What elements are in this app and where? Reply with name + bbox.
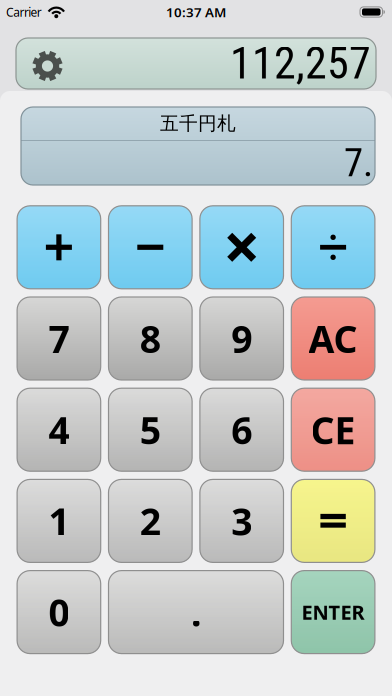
- button[interactable]: 2: [108, 479, 192, 562]
- button[interactable]: 8: [108, 297, 192, 380]
- staticText: 0: [48, 587, 69, 637]
- button[interactable]: 5: [108, 388, 192, 471]
- button[interactable]: Divide: [291, 206, 375, 289]
- staticText: 8: [140, 314, 161, 363]
- staticText: 4: [48, 405, 69, 454]
- button[interactable]: 6: [200, 388, 283, 471]
- staticText: 6: [231, 405, 252, 454]
- staticText: 7: [48, 314, 69, 363]
- staticText: 1: [48, 496, 69, 546]
- staticText: Carrier: [6, 4, 42, 20]
- button[interactable]: Decimal point: [108, 571, 283, 654]
- staticText: CE: [311, 405, 356, 454]
- button[interactable]: 3: [200, 479, 283, 562]
- button[interactable]: Multiply: [200, 206, 283, 289]
- staticText: 五千円札: [160, 112, 236, 135]
- staticText: 7.: [344, 140, 373, 186]
- button[interactable]: Subtract: [108, 206, 192, 289]
- button[interactable]: CE: [291, 388, 375, 471]
- button[interactable]: Equals: [291, 479, 375, 562]
- staticText: ENTER: [302, 599, 365, 625]
- staticText: 112,257: [230, 38, 371, 89]
- staticText: .: [191, 587, 201, 637]
- staticText: AC: [309, 314, 358, 363]
- button[interactable]: Add: [17, 206, 101, 289]
- staticText: 9: [231, 314, 252, 363]
- button[interactable]: Settings: [32, 50, 63, 81]
- button[interactable]: AC: [291, 297, 375, 380]
- button[interactable]: 7: [17, 297, 101, 380]
- staticText: 5: [140, 405, 161, 454]
- staticText: 3: [231, 496, 252, 546]
- staticText: 2: [140, 496, 161, 546]
- button[interactable]: 1: [17, 479, 101, 562]
- button[interactable]: ENTER: [291, 571, 375, 654]
- button[interactable]: 0: [17, 571, 101, 654]
- button[interactable]: 9: [200, 297, 283, 380]
- staticText: 10:37 AM: [166, 3, 226, 21]
- button[interactable]: 4: [17, 388, 101, 471]
